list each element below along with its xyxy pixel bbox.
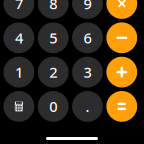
button[interactable]: 7 bbox=[3, 0, 34, 19]
button[interactable]: 3 bbox=[72, 57, 103, 87]
button[interactable]: 6 bbox=[72, 22, 103, 53]
button[interactable]: Multiply bbox=[106, 0, 137, 19]
button[interactable]: . bbox=[72, 91, 103, 122]
staticText: 3 bbox=[83, 62, 91, 82]
staticText: 2 bbox=[49, 62, 57, 82]
staticText: . bbox=[85, 97, 89, 116]
button[interactable]: 1 bbox=[3, 57, 34, 87]
button[interactable]: Calculator bbox=[3, 91, 34, 122]
staticText: 4 bbox=[15, 28, 23, 48]
button[interactable]: 2 bbox=[38, 57, 69, 87]
staticText: 8 bbox=[49, 0, 57, 13]
staticText: 5 bbox=[49, 28, 57, 48]
staticText: 7 bbox=[15, 0, 23, 13]
button[interactable]: Subtract bbox=[106, 22, 137, 53]
staticText: 9 bbox=[83, 0, 91, 13]
staticText: 0 bbox=[49, 97, 57, 116]
button[interactable]: 9 bbox=[72, 0, 103, 19]
staticText: 6 bbox=[83, 28, 91, 48]
button[interactable]: 5 bbox=[38, 22, 69, 53]
staticText: 1 bbox=[15, 62, 23, 82]
button[interactable]: 4 bbox=[3, 22, 34, 53]
button[interactable]: 0 bbox=[38, 91, 69, 122]
button[interactable]: 8 bbox=[38, 0, 69, 19]
button[interactable]: Equals bbox=[106, 91, 137, 122]
button[interactable]: Add bbox=[106, 57, 137, 87]
